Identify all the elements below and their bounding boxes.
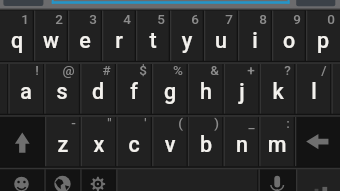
staticText: w [34, 28, 68, 53]
staticText: ( [178, 115, 183, 131]
staticText: ? [284, 62, 291, 78]
staticText: 3 [89, 11, 97, 27]
staticText: g [152, 79, 188, 104]
button[interactable]: Emoji [0, 168, 44, 191]
staticText: j [224, 79, 260, 104]
staticText: ! [35, 62, 39, 78]
staticText: p [306, 28, 340, 53]
staticText: d [80, 79, 116, 104]
staticText: : [286, 115, 290, 131]
staticText: h [188, 79, 224, 104]
button[interactable]: f [116, 62, 152, 115]
staticText: b [188, 132, 224, 157]
button[interactable]: t [136, 11, 170, 63]
staticText: - [71, 115, 76, 131]
staticText: v [152, 132, 188, 157]
staticText: % [173, 62, 183, 78]
staticText: 5 [157, 11, 165, 27]
staticText: o [272, 28, 306, 53]
button[interactable]: j [224, 62, 260, 115]
button[interactable]: a [8, 62, 44, 115]
staticText: 1 [21, 11, 29, 27]
button[interactable]: r [102, 11, 136, 63]
staticText: f [116, 79, 152, 104]
button[interactable]: c [116, 115, 152, 168]
staticText: r [102, 28, 136, 53]
button[interactable]: b [188, 115, 224, 168]
staticText: k [260, 79, 296, 104]
staticText: y [170, 28, 204, 53]
staticText: _ [248, 115, 255, 131]
button[interactable]: o [272, 11, 306, 63]
staticText: " [107, 115, 112, 131]
staticText: & [210, 62, 219, 78]
staticText: 7 [225, 11, 233, 27]
staticText: l [296, 79, 332, 104]
staticText: @ [62, 62, 75, 78]
staticText: 0 [327, 11, 335, 27]
button[interactable]: x [81, 115, 117, 168]
button[interactable]: z [45, 115, 81, 168]
staticText: e [68, 28, 102, 53]
staticText: 8 [259, 11, 267, 27]
button[interactable]: Change keyboard language [44, 168, 80, 191]
staticText: n [224, 132, 260, 157]
staticText: + [247, 62, 255, 78]
button[interactable]: d [80, 62, 116, 115]
staticText: q [0, 28, 34, 53]
staticText: 4 [123, 11, 131, 27]
button[interactable]: m [259, 115, 295, 168]
button[interactable]: u [204, 11, 238, 63]
staticText: ' [144, 115, 147, 131]
staticText: t [136, 28, 170, 53]
button[interactable]: n [224, 115, 260, 168]
staticText: x [81, 132, 117, 157]
button[interactable]: Settings [80, 168, 116, 191]
staticText: a [8, 79, 44, 104]
button[interactable]: Backspace [295, 115, 340, 168]
staticText: 9 [293, 11, 301, 27]
staticText: z [45, 132, 81, 157]
staticText: 6 [191, 11, 199, 27]
staticText: m [259, 132, 295, 157]
staticText: c [116, 132, 152, 157]
button[interactable]: l [296, 62, 332, 115]
staticText: 2 [55, 11, 63, 27]
button[interactable]: y [170, 11, 204, 63]
button[interactable]: h [188, 62, 224, 115]
button[interactable]: s [44, 62, 80, 115]
staticText: ) [214, 115, 219, 131]
button[interactable]: Space [116, 168, 258, 191]
staticText: i [238, 28, 272, 53]
button[interactable]: e [68, 11, 102, 63]
button[interactable]: i [238, 11, 272, 63]
button[interactable]: k [260, 62, 296, 115]
button[interactable]: Shift [0, 115, 45, 168]
staticText: # [102, 62, 111, 78]
button[interactable]: v [152, 115, 188, 168]
button[interactable]: p [306, 11, 340, 63]
button[interactable]: Voice input [259, 168, 297, 191]
staticText: u [204, 28, 238, 53]
button[interactable]: Period [296, 168, 340, 191]
staticText: $ [139, 62, 147, 78]
button[interactable]: q [0, 11, 34, 63]
staticText: / [321, 62, 327, 78]
button[interactable]: w [34, 11, 68, 63]
button[interactable]: g [152, 62, 188, 115]
staticText: s [44, 79, 80, 104]
